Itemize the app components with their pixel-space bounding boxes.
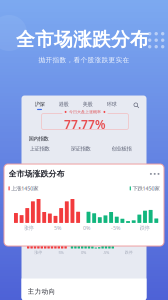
staticText: -5% (103, 250, 109, 255)
staticText: 5% (54, 224, 61, 231)
button[interactable]: 环球 (99, 98, 123, 112)
staticText: 沪深 (34, 101, 44, 107)
staticText: 深证指数 (70, 145, 90, 152)
button[interactable]: 创业板指 (111, 145, 152, 152)
staticText: 涨停 (34, 250, 42, 255)
staticText: 跌停 (125, 250, 133, 255)
staticText: 下跌1450家 (132, 185, 159, 192)
staticText: 77.77% (64, 116, 106, 132)
staticText: 美股 (82, 101, 92, 107)
staticText: 今日大盘上涨概率 (69, 109, 101, 114)
staticText: 跌停 (139, 225, 149, 231)
staticText: 5% (58, 250, 63, 255)
button[interactable]: 深证指数 (70, 145, 111, 152)
staticText: 环球 (106, 101, 116, 107)
button[interactable]: 搜索 (133, 102, 146, 108)
staticText: 0% (83, 224, 90, 231)
button[interactable]: 沪深 (27, 98, 51, 112)
staticText: 上证指数 (29, 145, 49, 152)
staticText: 上涨1450家 (11, 185, 38, 192)
staticText: 国内指数 (28, 135, 48, 142)
button[interactable]: 上证指数 (29, 145, 70, 152)
staticText: 全市场涨跌分布 (8, 169, 64, 179)
staticText: 全市场涨跌分布 (16, 28, 149, 51)
staticText: 涨停 (23, 225, 33, 231)
button[interactable]: 港股 (51, 98, 75, 112)
staticText: -5% (111, 224, 120, 231)
staticText: 港股 (58, 101, 68, 107)
staticText: 主力动向 (27, 287, 55, 296)
staticText: 抛开指数，看个股涨跌更实在 (38, 56, 129, 64)
staticText: 0% (81, 250, 86, 255)
staticText: 创业板指 (111, 145, 131, 152)
button[interactable]: 美股 (75, 98, 99, 112)
